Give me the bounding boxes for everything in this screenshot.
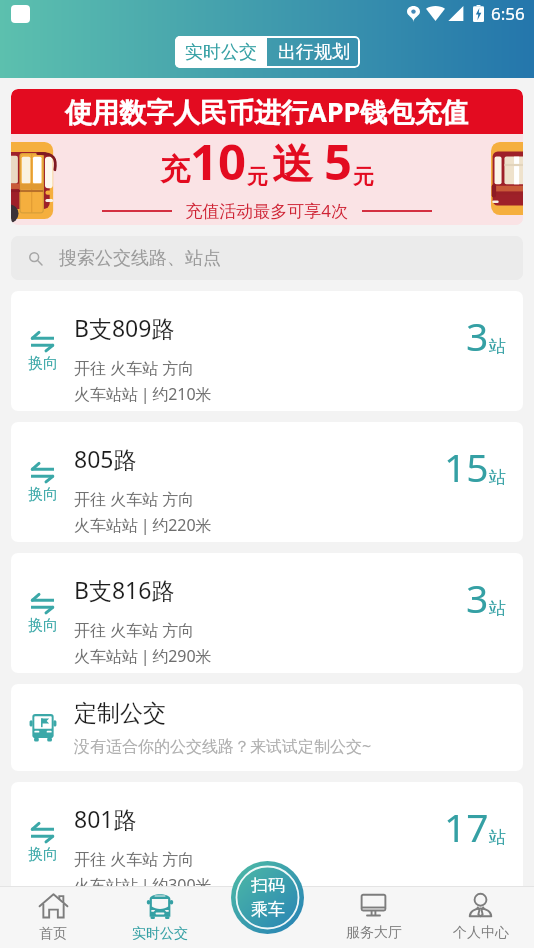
button[interactable]: 换向 bbox=[11, 291, 74, 411]
staticText: 火车站站 | 约220米 bbox=[74, 514, 212, 536]
staticText: 没有适合你的公交线路？来试试定制公交~ bbox=[74, 735, 372, 757]
button[interactable]: 换向 bbox=[11, 782, 74, 902]
button[interactable]: 使用数字人民币进行APP钱包充值 bbox=[11, 89, 523, 225]
staticText: 出行规划 bbox=[278, 41, 350, 64]
staticText: 3 bbox=[466, 571, 489, 624]
button[interactable]: 定制公交 bbox=[11, 684, 523, 771]
staticText: 换向 bbox=[28, 845, 58, 864]
button[interactable]: 换向 bbox=[11, 553, 74, 673]
staticText: 乘车 bbox=[251, 899, 285, 920]
staticText: 开往 火车站 方向 bbox=[74, 848, 195, 870]
staticText: B支816路 bbox=[74, 574, 175, 605]
staticText: 6:56 bbox=[491, 2, 525, 25]
staticText: 15 bbox=[444, 440, 489, 493]
staticText: 3 bbox=[466, 309, 489, 362]
staticText: 定制公交 bbox=[74, 699, 166, 728]
button[interactable]: 实时公交 bbox=[106, 887, 213, 948]
staticText: 站 bbox=[489, 336, 506, 357]
staticText: 换向 bbox=[28, 485, 58, 504]
staticText: 805路 bbox=[74, 443, 137, 474]
staticText: 5 bbox=[324, 128, 353, 195]
staticText: 站 bbox=[489, 598, 506, 619]
button[interactable]: 出行规划 bbox=[267, 36, 360, 68]
staticText: 开往 火车站 方向 bbox=[74, 488, 195, 510]
button[interactable]: 个人中心 bbox=[427, 887, 534, 948]
button[interactable]: 首页 bbox=[0, 887, 106, 948]
staticText: 10 bbox=[190, 128, 247, 195]
staticText: 换向 bbox=[28, 616, 58, 635]
staticText: 17 bbox=[444, 800, 489, 853]
staticText: 站 bbox=[489, 467, 506, 488]
staticText: 服务大厅 bbox=[346, 924, 402, 942]
staticText: 送 bbox=[272, 139, 313, 191]
staticText: 火车站站 | 约290米 bbox=[74, 645, 212, 667]
button[interactable]: 换向 bbox=[11, 553, 523, 673]
staticText: 充 bbox=[160, 151, 190, 189]
button[interactable]: 扫码乘车 bbox=[231, 861, 304, 934]
staticText: 站 bbox=[489, 827, 506, 848]
staticText: 火车站站 | 约300米 bbox=[74, 874, 212, 896]
button[interactable]: 服务大厅 bbox=[320, 887, 427, 948]
button[interactable]: 搜索公交线路、站点 bbox=[11, 236, 523, 280]
staticText: 使用数字人民币进行APP钱包充值 bbox=[65, 93, 469, 130]
staticText: 元 bbox=[247, 164, 268, 190]
staticText: 换向 bbox=[28, 354, 58, 373]
staticText: 开往 火车站 方向 bbox=[74, 357, 195, 379]
staticText: 首页 bbox=[39, 925, 67, 943]
staticText: B支809路 bbox=[74, 312, 175, 343]
staticText: 开往 火车站 方向 bbox=[74, 619, 195, 641]
staticText: 元 bbox=[353, 164, 374, 190]
staticText: 搜索公交线路、站点 bbox=[59, 247, 221, 270]
staticText: 个人中心 bbox=[453, 924, 509, 942]
staticText: 火车站站 | 约210米 bbox=[74, 383, 212, 405]
button[interactable]: 换向 bbox=[11, 291, 523, 411]
button[interactable]: 换向 bbox=[11, 422, 74, 542]
button[interactable]: 实时公交 bbox=[175, 36, 267, 68]
staticText: 充值活动最多可享4次 bbox=[172, 199, 362, 222]
button[interactable]: 换向 bbox=[11, 782, 523, 902]
staticText: 实时公交 bbox=[132, 925, 188, 943]
staticText: 实时公交 bbox=[185, 41, 257, 64]
staticText: 扫码 bbox=[251, 875, 285, 896]
staticText: 801路 bbox=[74, 803, 137, 834]
button[interactable]: 换向 bbox=[11, 422, 523, 542]
